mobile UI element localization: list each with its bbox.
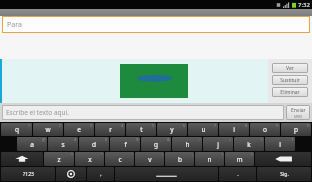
staticText: " bbox=[101, 152, 103, 157]
button[interactable]: Para bbox=[2, 16, 310, 33]
button[interactable]: q bbox=[1, 123, 32, 136]
staticText: 1 bbox=[28, 123, 31, 128]
button[interactable]: f bbox=[110, 137, 140, 151]
button[interactable]: , bbox=[87, 167, 114, 181]
button[interactable]: Eliminar bbox=[272, 87, 308, 97]
staticText: Enviar bbox=[291, 107, 306, 114]
staticText: . bbox=[237, 171, 239, 178]
staticText: d bbox=[92, 140, 96, 149]
staticText: s bbox=[61, 140, 65, 149]
staticText: u bbox=[201, 125, 206, 134]
button[interactable]: j bbox=[203, 137, 233, 151]
button[interactable]: m bbox=[225, 152, 254, 166]
button[interactable]: o bbox=[250, 123, 280, 136]
staticText: g bbox=[154, 140, 158, 149]
staticText: p bbox=[294, 125, 298, 134]
button[interactable]: a bbox=[17, 137, 47, 151]
staticText: 2 bbox=[59, 123, 62, 128]
staticText: # bbox=[74, 137, 77, 142]
staticText: l bbox=[279, 140, 281, 149]
button[interactable]: y bbox=[157, 123, 187, 136]
staticText: MMS bbox=[294, 114, 303, 119]
staticText: b bbox=[178, 155, 182, 164]
button[interactable]: u bbox=[188, 123, 218, 136]
staticText: ; bbox=[192, 152, 193, 157]
staticText: t bbox=[140, 125, 143, 134]
button[interactable]: l bbox=[265, 137, 295, 151]
staticText: 7 bbox=[214, 123, 217, 128]
staticText: a bbox=[30, 140, 34, 149]
staticText: z bbox=[57, 155, 61, 164]
button[interactable]: e bbox=[64, 123, 94, 136]
staticText: Sustituir bbox=[280, 77, 300, 84]
button[interactable]: ?123 bbox=[1, 167, 55, 181]
button[interactable]: i bbox=[219, 123, 249, 136]
staticText: Ver bbox=[286, 65, 294, 72]
staticText: w bbox=[45, 125, 51, 134]
staticText: q bbox=[15, 125, 19, 134]
button[interactable]: Sig. bbox=[257, 167, 311, 181]
staticText: n bbox=[207, 155, 212, 164]
button[interactable]: Mayúsculas bbox=[1, 152, 43, 166]
button[interactable]: Borrar bbox=[255, 152, 311, 166]
button[interactable]: r bbox=[95, 123, 125, 136]
button[interactable]: d bbox=[79, 137, 109, 151]
button[interactable]: Espacio bbox=[115, 167, 218, 181]
staticText: ) bbox=[292, 137, 294, 142]
staticText: ! bbox=[222, 152, 223, 157]
staticText: 8 bbox=[245, 123, 248, 128]
button[interactable]: c bbox=[105, 152, 134, 166]
button[interactable]: Sustituir bbox=[272, 75, 308, 85]
button[interactable]: Ver bbox=[272, 63, 308, 73]
button[interactable]: Opciones de entrada bbox=[56, 167, 86, 181]
button[interactable]: . bbox=[219, 167, 256, 181]
staticText: ( bbox=[261, 137, 263, 142]
button[interactable]: Enviar bbox=[286, 105, 310, 120]
staticText: m bbox=[236, 155, 243, 164]
button[interactable]: t bbox=[126, 123, 156, 136]
staticText: - bbox=[199, 137, 201, 142]
staticText: h bbox=[185, 140, 190, 149]
button[interactable]: v bbox=[135, 152, 164, 166]
staticText: Escribe el texto aquí. bbox=[6, 108, 69, 117]
staticText: y bbox=[170, 125, 174, 134]
staticText: @ bbox=[42, 137, 46, 142]
staticText: 0 bbox=[307, 123, 310, 128]
staticText: 9 bbox=[276, 123, 279, 128]
staticText: + bbox=[229, 137, 232, 142]
staticText: % bbox=[136, 137, 139, 142]
staticText: : bbox=[162, 152, 163, 157]
button[interactable]: s bbox=[48, 137, 78, 151]
staticText: x bbox=[88, 155, 92, 164]
staticText: Eliminar bbox=[280, 89, 300, 96]
button[interactable]: z bbox=[44, 152, 74, 166]
staticText: 7:32 bbox=[298, 1, 310, 9]
staticText: 5 bbox=[152, 123, 155, 128]
button[interactable]: h bbox=[172, 137, 202, 151]
button[interactable]: k bbox=[234, 137, 264, 151]
staticText: ?123 bbox=[23, 171, 34, 178]
staticText: e bbox=[77, 125, 81, 134]
staticText: * bbox=[71, 152, 73, 157]
button[interactable]: p bbox=[281, 123, 311, 136]
staticText: o bbox=[263, 125, 267, 134]
staticText: Para bbox=[7, 20, 22, 30]
button[interactable]: g bbox=[141, 137, 171, 151]
staticText: k bbox=[247, 140, 251, 149]
button[interactable]: x bbox=[75, 152, 104, 166]
staticText: ? bbox=[251, 152, 253, 157]
button[interactable]: Escribe el texto aquí. bbox=[2, 105, 284, 120]
button[interactable]: Imagen adjunta bbox=[120, 64, 188, 98]
staticText: v bbox=[148, 155, 152, 164]
staticText: $ bbox=[105, 137, 108, 142]
staticText: r bbox=[109, 125, 112, 134]
staticText: 3 bbox=[90, 123, 93, 128]
button[interactable]: b bbox=[165, 152, 194, 166]
staticText: 6 bbox=[183, 123, 186, 128]
staticText: i bbox=[233, 125, 235, 134]
staticText: ' bbox=[132, 152, 133, 157]
staticText: 4 bbox=[121, 123, 124, 128]
staticText: & bbox=[167, 137, 170, 142]
button[interactable]: n bbox=[195, 152, 224, 166]
button[interactable]: w bbox=[33, 123, 63, 136]
